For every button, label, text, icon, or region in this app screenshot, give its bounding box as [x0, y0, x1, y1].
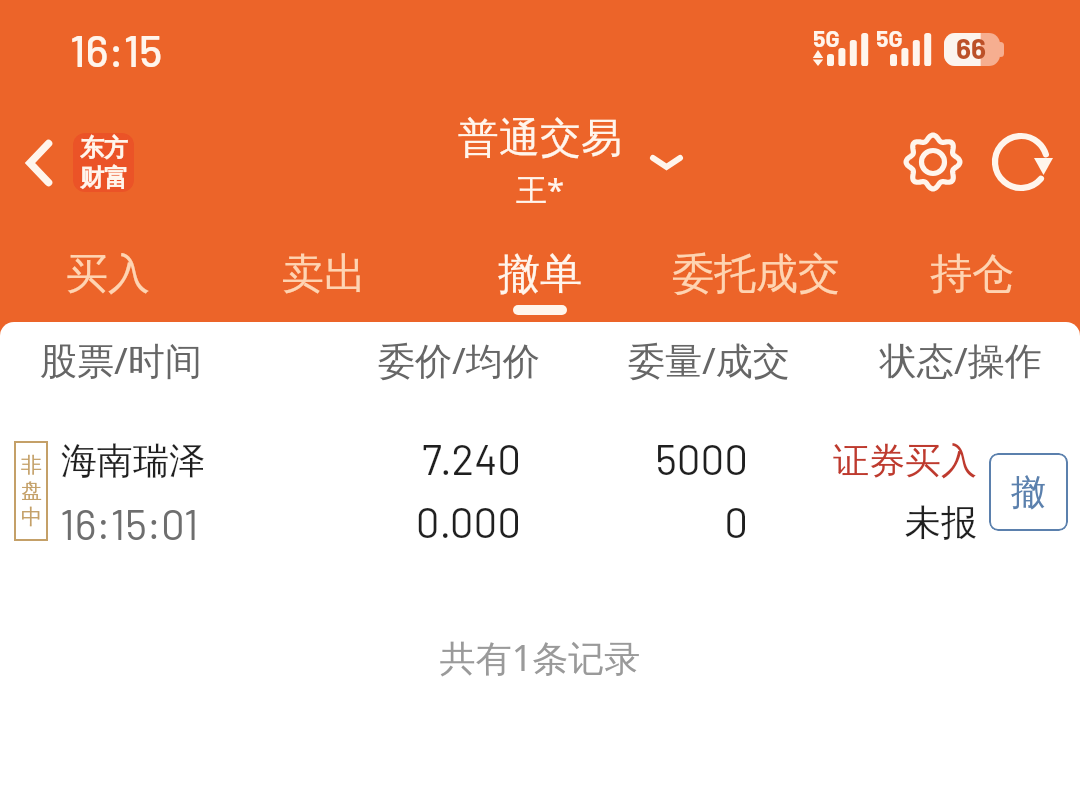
staticText: 16:15:01 — [60, 498, 199, 548]
staticText: 5G — [813, 24, 840, 52]
staticText: 状态/操作 — [880, 334, 1042, 385]
staticText: 中 — [21, 504, 42, 530]
staticText: 盘 — [21, 478, 42, 504]
button[interactable]: 委托成交 — [648, 230, 864, 322]
button[interactable]: 普通交易 — [420, 113, 700, 213]
staticText: 非 — [21, 452, 42, 478]
staticText: 证券买入 — [0, 438, 977, 483]
staticText: 买入 — [66, 248, 150, 301]
staticText: 财富 — [80, 163, 128, 192]
staticText: 撤 — [1011, 470, 1046, 514]
staticText: 16:15 — [70, 23, 163, 76]
staticText: 未报 — [0, 500, 977, 545]
staticText: 7.240 — [0, 433, 521, 483]
staticText: 0 — [0, 496, 748, 546]
staticText: 66 — [956, 31, 987, 65]
staticText: 普通交易 — [458, 113, 622, 165]
button[interactable]: 非 — [0, 425, 1080, 557]
button[interactable]: 撤 — [989, 453, 1068, 531]
staticText: 5G — [876, 24, 903, 52]
staticText: 王* — [516, 168, 565, 210]
staticText: 委托成交 — [672, 248, 840, 301]
button[interactable]: 持仓 — [864, 230, 1080, 322]
staticText: 委量/成交 — [628, 334, 790, 385]
staticText: 撤单 — [498, 248, 582, 301]
staticText: 持仓 — [930, 248, 1014, 301]
button[interactable]: Back — [21, 129, 138, 196]
button[interactable]: 撤单 — [432, 230, 648, 322]
staticText: 5000 — [0, 433, 748, 483]
button[interactable]: 买入 — [0, 230, 216, 322]
staticText: 股票/时间 — [40, 334, 202, 385]
staticText: 东方 — [80, 133, 128, 163]
staticText: 海南瑞泽 — [61, 438, 205, 483]
staticText: 0.000 — [0, 496, 521, 546]
button[interactable]: Refresh — [988, 126, 1060, 198]
button[interactable]: Settings — [897, 126, 969, 198]
staticText: 卖出 — [282, 248, 366, 301]
staticText: 共有1条记录 — [0, 633, 1080, 682]
staticText: 委价/均价 — [378, 334, 540, 385]
button[interactable]: 卖出 — [216, 230, 432, 322]
